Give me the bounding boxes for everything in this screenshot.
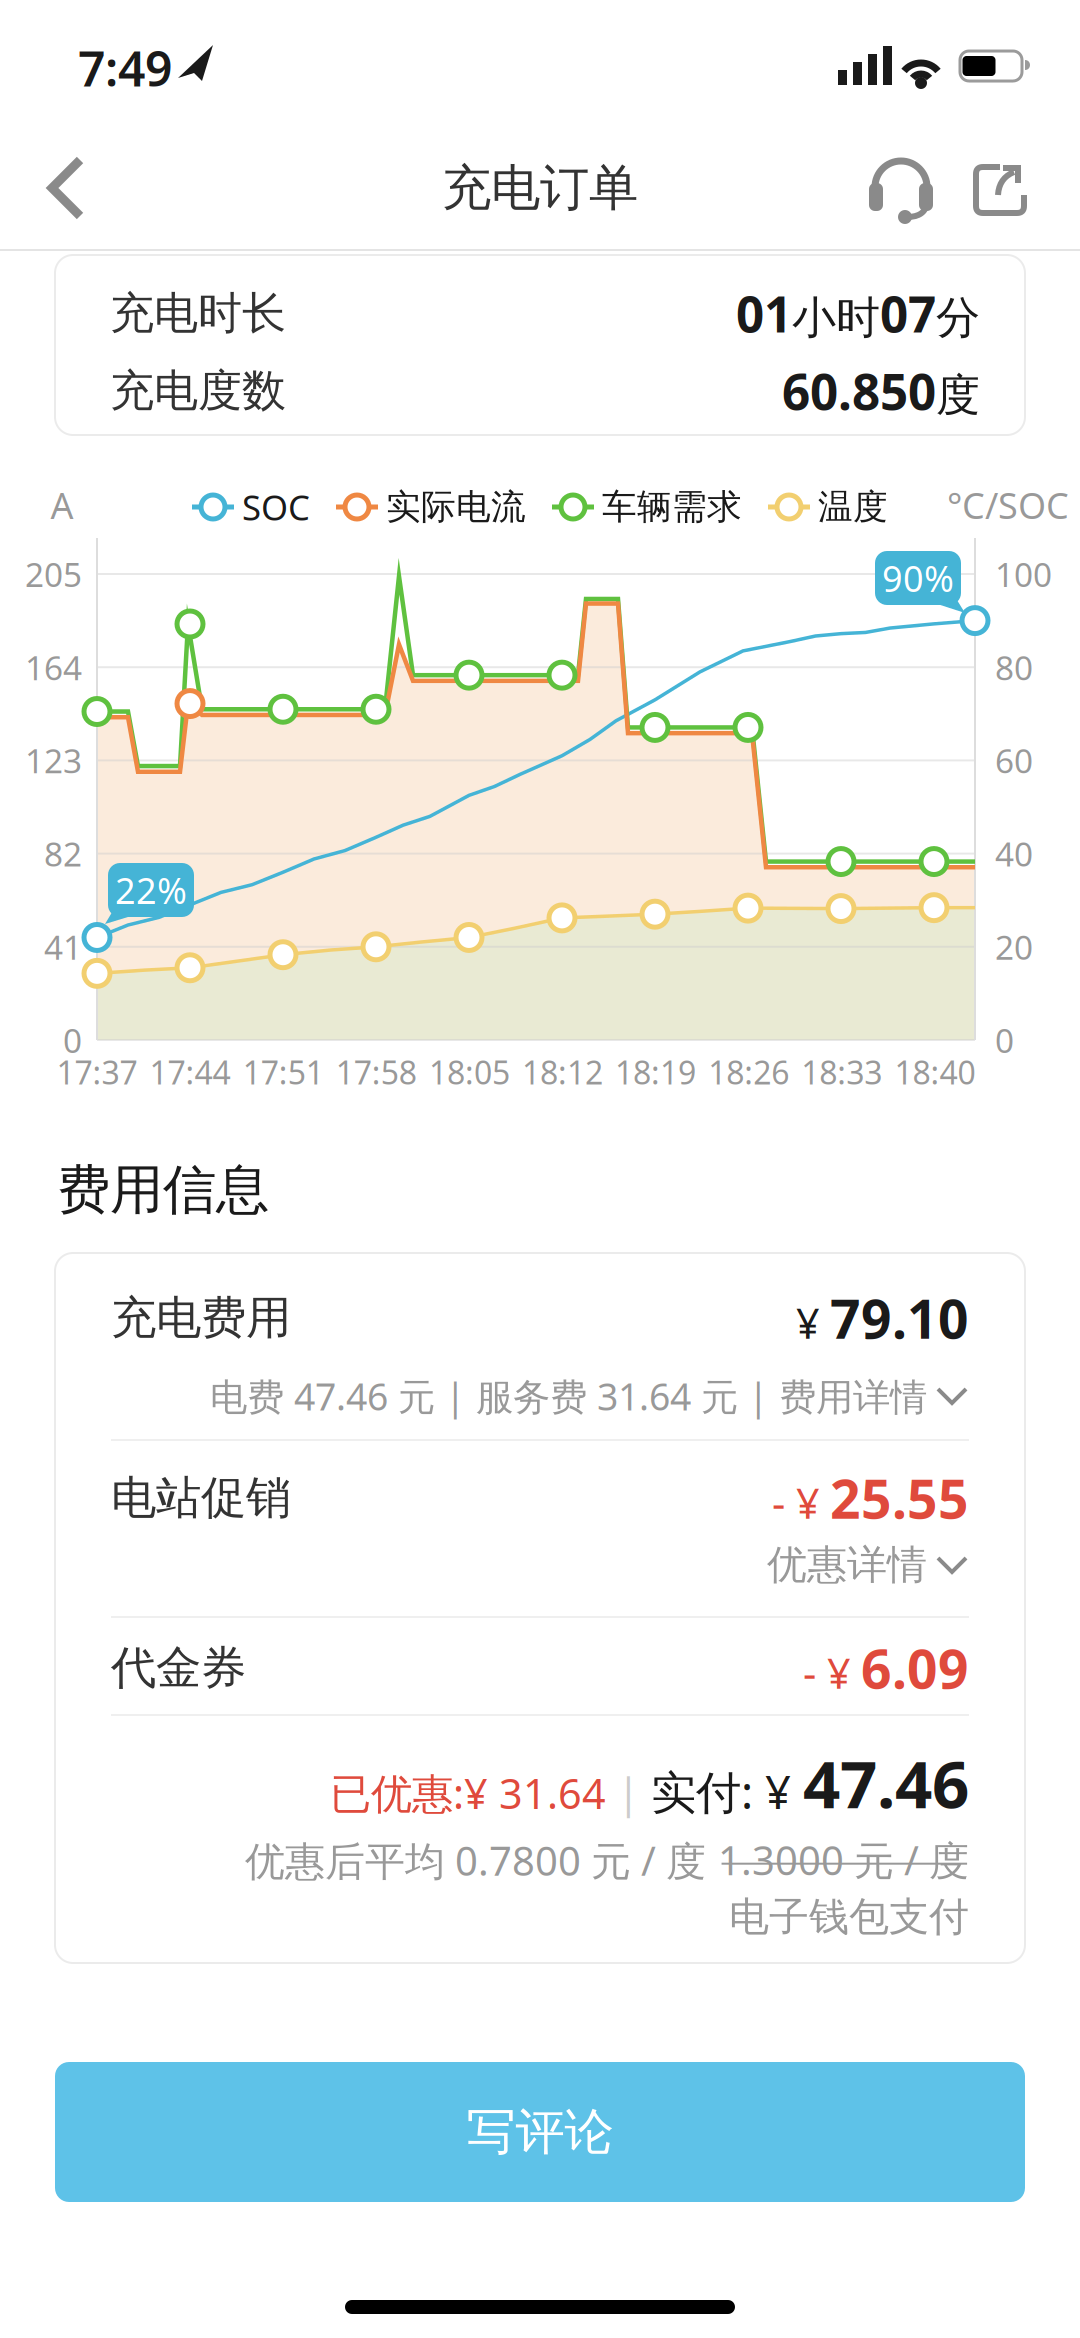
- staticText: 07: [880, 280, 936, 346]
- staticText: 18:33: [801, 1051, 882, 1093]
- staticText: 40: [995, 831, 1033, 876]
- staticText: 代金券: [111, 1640, 246, 1696]
- staticText: 82: [44, 831, 82, 876]
- staticText: SOC: [242, 484, 310, 530]
- staticText: 25.55: [830, 1463, 969, 1533]
- button[interactable]: 电费 47.46 元 | 服务费 31.64 元 | 费用详情: [210, 1371, 969, 1421]
- staticText: 优惠详情: [767, 1540, 927, 1589]
- button[interactable]: Back: [36, 152, 96, 224]
- staticText: °C/SOC: [947, 481, 1069, 529]
- staticText: 80: [995, 645, 1033, 689]
- staticText: 充电订单: [442, 158, 638, 218]
- button[interactable]: 优惠详情: [767, 1540, 969, 1589]
- staticText: 17:44: [150, 1051, 231, 1093]
- staticText: 电站促销: [111, 1470, 291, 1526]
- staticText: 电费 47.46 元 | 服务费 31.64 元 | 费用详情: [210, 1371, 927, 1421]
- staticText: 205: [25, 552, 82, 596]
- button[interactable]: 写评论: [55, 2062, 1025, 2202]
- staticText: 优惠后平均 0.7800 元 / 度: [245, 1834, 718, 1887]
- staticText: 已优惠:¥ 31.64: [330, 1765, 606, 1820]
- staticText: 01: [736, 280, 792, 346]
- staticText: 充电费用: [111, 1290, 291, 1346]
- staticText: 7:49: [78, 36, 172, 100]
- staticText: 123: [25, 738, 82, 783]
- staticText: 费用信息: [57, 1157, 269, 1223]
- staticText: A: [50, 481, 73, 529]
- staticText: 60: [995, 738, 1033, 783]
- staticText: 充电度数: [110, 364, 286, 418]
- staticText: 18:19: [615, 1051, 696, 1093]
- staticText: |: [606, 1765, 651, 1820]
- staticText: ¥: [796, 1295, 820, 1350]
- staticText: 90%: [882, 554, 954, 602]
- staticText: 6.09: [861, 1633, 969, 1703]
- staticText: 17:51: [243, 1051, 324, 1093]
- staticText: 17:58: [336, 1051, 417, 1093]
- staticText: 17:37: [56, 1051, 137, 1093]
- staticText: 18:12: [522, 1051, 603, 1093]
- staticText: 车辆需求: [602, 486, 742, 528]
- staticText: 60.850: [782, 358, 936, 423]
- staticText: 实付: ¥: [651, 1761, 803, 1821]
- staticText: 分: [936, 291, 980, 345]
- staticText: 79.10: [830, 1283, 969, 1353]
- staticText: 18:40: [894, 1051, 975, 1093]
- button[interactable]: Share: [974, 165, 1026, 215]
- staticText: 20: [995, 925, 1033, 969]
- button[interactable]: Customer service: [868, 155, 934, 229]
- staticText: 温度: [818, 486, 888, 528]
- staticText: 18:26: [708, 1051, 789, 1093]
- staticText: 写评论: [466, 2102, 613, 2162]
- staticText: - ¥: [772, 1475, 820, 1530]
- staticText: 100: [995, 552, 1052, 596]
- staticText: 电子钱包支付: [729, 1892, 969, 1941]
- staticText: 47.46: [803, 1740, 969, 1826]
- staticText: - ¥: [803, 1645, 851, 1700]
- staticText: 0: [63, 1018, 82, 1062]
- staticText: 度: [936, 368, 980, 422]
- staticText: 41: [44, 925, 82, 969]
- staticText: 1.3000 元 / 度: [718, 1833, 969, 1886]
- staticText: 实际电流: [386, 486, 526, 528]
- staticText: 22%: [115, 866, 187, 914]
- staticText: 18:05: [429, 1051, 510, 1093]
- staticText: 0: [995, 1018, 1014, 1062]
- staticText: 充电时长: [110, 286, 286, 340]
- staticText: 小时: [792, 291, 880, 345]
- staticText: 164: [25, 645, 82, 689]
